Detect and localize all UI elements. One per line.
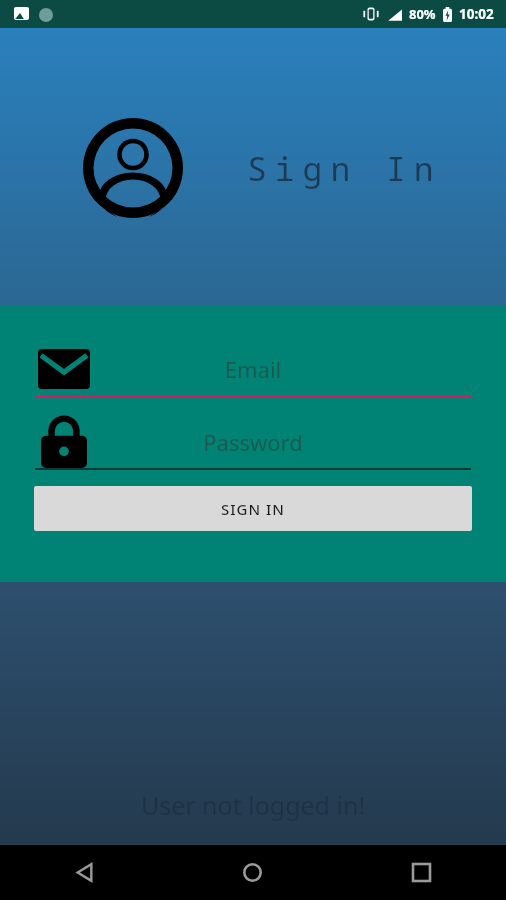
button[interactable]: Home <box>168 845 337 900</box>
staticText: Sign In <box>247 146 442 191</box>
other: Email <box>38 349 90 389</box>
button[interactable]: Password <box>35 416 471 470</box>
staticText: User not logged in! <box>0 788 506 822</box>
button[interactable]: Recents <box>337 845 506 900</box>
other: Password <box>41 416 87 468</box>
staticText: Email <box>93 354 413 384</box>
staticText: 10:02 <box>459 5 494 23</box>
button[interactable]: Email <box>35 343 471 398</box>
staticText: Password <box>93 427 413 457</box>
button[interactable]: Back <box>0 845 168 900</box>
staticText: 80% <box>409 5 436 23</box>
staticText: SIGN IN <box>221 499 285 519</box>
button[interactable]: SIGN IN <box>34 486 472 531</box>
